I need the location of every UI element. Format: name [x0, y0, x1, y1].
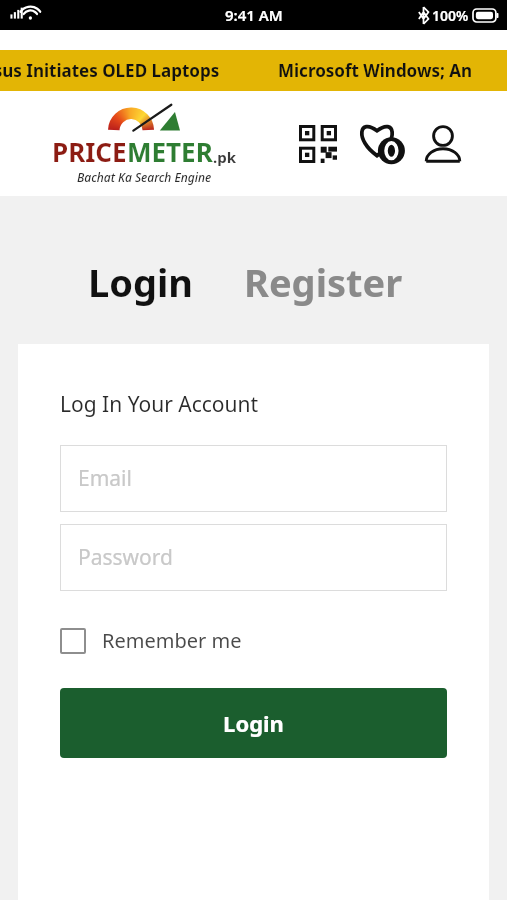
button[interactable]: Register: [244, 252, 403, 312]
staticText: Register: [244, 256, 403, 308]
staticText: Log In Your Account: [60, 390, 259, 419]
staticText: Remember me: [102, 627, 242, 654]
button[interactable]: Remember me: [60, 621, 242, 660]
staticText: 9:41 AM: [225, 5, 283, 25]
staticText: Asus Initiates OLED Laptops: [0, 59, 220, 82]
staticText: PRICE: [52, 134, 127, 169]
staticText: 100%: [432, 6, 469, 25]
staticText: Email: [78, 464, 132, 493]
staticText: Login: [223, 708, 284, 738]
button[interactable]: PRICE: [52, 103, 236, 185]
button[interactable]: Account: [421, 122, 465, 166]
button[interactable]: Wishlist, 0 items: [357, 119, 407, 169]
button[interactable]: Scan QR code: [295, 121, 341, 167]
staticText: .pk: [213, 147, 236, 167]
staticText: Microsoft Windows; An: [278, 59, 473, 82]
button[interactable]: Login: [60, 688, 447, 758]
button[interactable]: Email: [60, 445, 447, 512]
button[interactable]: Password: [60, 524, 447, 591]
button[interactable]: Asus Initiates OLED Laptops: [0, 50, 507, 91]
staticText: Password: [78, 543, 173, 572]
button[interactable]: Login: [88, 252, 194, 312]
staticText: METER: [127, 134, 213, 169]
staticText: Login: [88, 256, 194, 308]
staticText: Bachat Ka Search Engine: [77, 169, 212, 185]
